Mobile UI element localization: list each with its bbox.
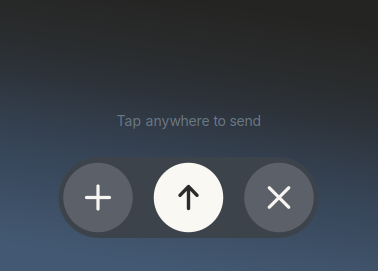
button[interactable]: Send <box>154 163 223 232</box>
staticText: Tap anywhere to send <box>116 112 261 129</box>
button[interactable]: Cancel <box>244 163 314 232</box>
button[interactable]: Add attachment <box>63 163 133 232</box>
